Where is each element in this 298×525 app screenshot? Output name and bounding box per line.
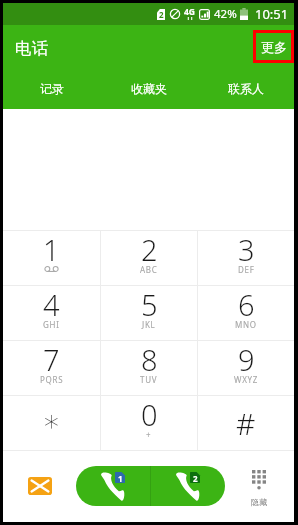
staticText: + <box>146 429 152 440</box>
staticText: 更多 <box>261 39 287 55</box>
staticText: 0 <box>141 395 158 434</box>
staticText: 2 <box>193 473 198 484</box>
button[interactable]: 3 <box>198 231 294 285</box>
staticText: 电话 <box>15 38 48 59</box>
staticText: WXYZ <box>234 374 259 385</box>
staticText: 9 <box>238 340 255 379</box>
button[interactable]: # <box>198 396 294 450</box>
staticText: 联系人 <box>228 81 264 96</box>
staticText: 收藏夹 <box>131 81 167 96</box>
button[interactable]: 收藏夹 <box>100 69 197 109</box>
staticText: 4 <box>43 285 60 324</box>
button[interactable]: Call with SIM 2 <box>151 466 225 506</box>
staticText: 1 <box>43 230 60 269</box>
staticText: 5 <box>141 285 158 324</box>
button[interactable]: 0 <box>101 396 197 450</box>
staticText: 1 <box>118 473 123 484</box>
button[interactable]: 6 <box>198 286 294 340</box>
button[interactable]: Hide keypad <box>237 464 281 522</box>
staticText: 7 <box>43 340 60 379</box>
button[interactable]: 4 <box>3 286 100 340</box>
staticText: 3 <box>238 230 255 269</box>
staticText: JKL <box>142 319 156 330</box>
staticText: 6 <box>238 285 255 324</box>
staticText: 4G <box>184 6 196 18</box>
button[interactable]: 2 <box>101 231 197 285</box>
button[interactable]: 5 <box>101 286 197 340</box>
staticText: 8 <box>141 340 158 379</box>
staticText: 隐藏 <box>251 497 267 507</box>
staticText: 10:51 <box>255 5 289 23</box>
staticText: ABC <box>140 264 158 275</box>
button[interactable]: 更多 <box>253 30 294 63</box>
staticText: PQRS <box>40 374 64 385</box>
staticText: DEF <box>238 264 255 275</box>
button[interactable]: 记录 <box>3 69 100 109</box>
button[interactable]: Messages <box>22 471 58 501</box>
staticText: 2 <box>159 9 164 20</box>
button[interactable]: 1 <box>3 231 100 285</box>
button[interactable]: 9 <box>198 341 294 395</box>
staticText: 42% <box>214 6 237 22</box>
staticText: GHI <box>43 319 60 330</box>
staticText: MNO <box>235 319 257 330</box>
button[interactable]: 联系人 <box>197 69 294 109</box>
staticText: 记录 <box>40 81 64 96</box>
button[interactable]: ∗ <box>3 396 100 450</box>
button[interactable]: 8 <box>101 341 197 395</box>
staticText: 2 <box>141 230 158 269</box>
staticText: ∗ <box>42 403 61 438</box>
button[interactable]: Call with SIM 1 <box>76 466 150 506</box>
staticText: # <box>236 403 256 444</box>
staticText: TUV <box>140 374 158 385</box>
button[interactable]: 7 <box>3 341 100 395</box>
